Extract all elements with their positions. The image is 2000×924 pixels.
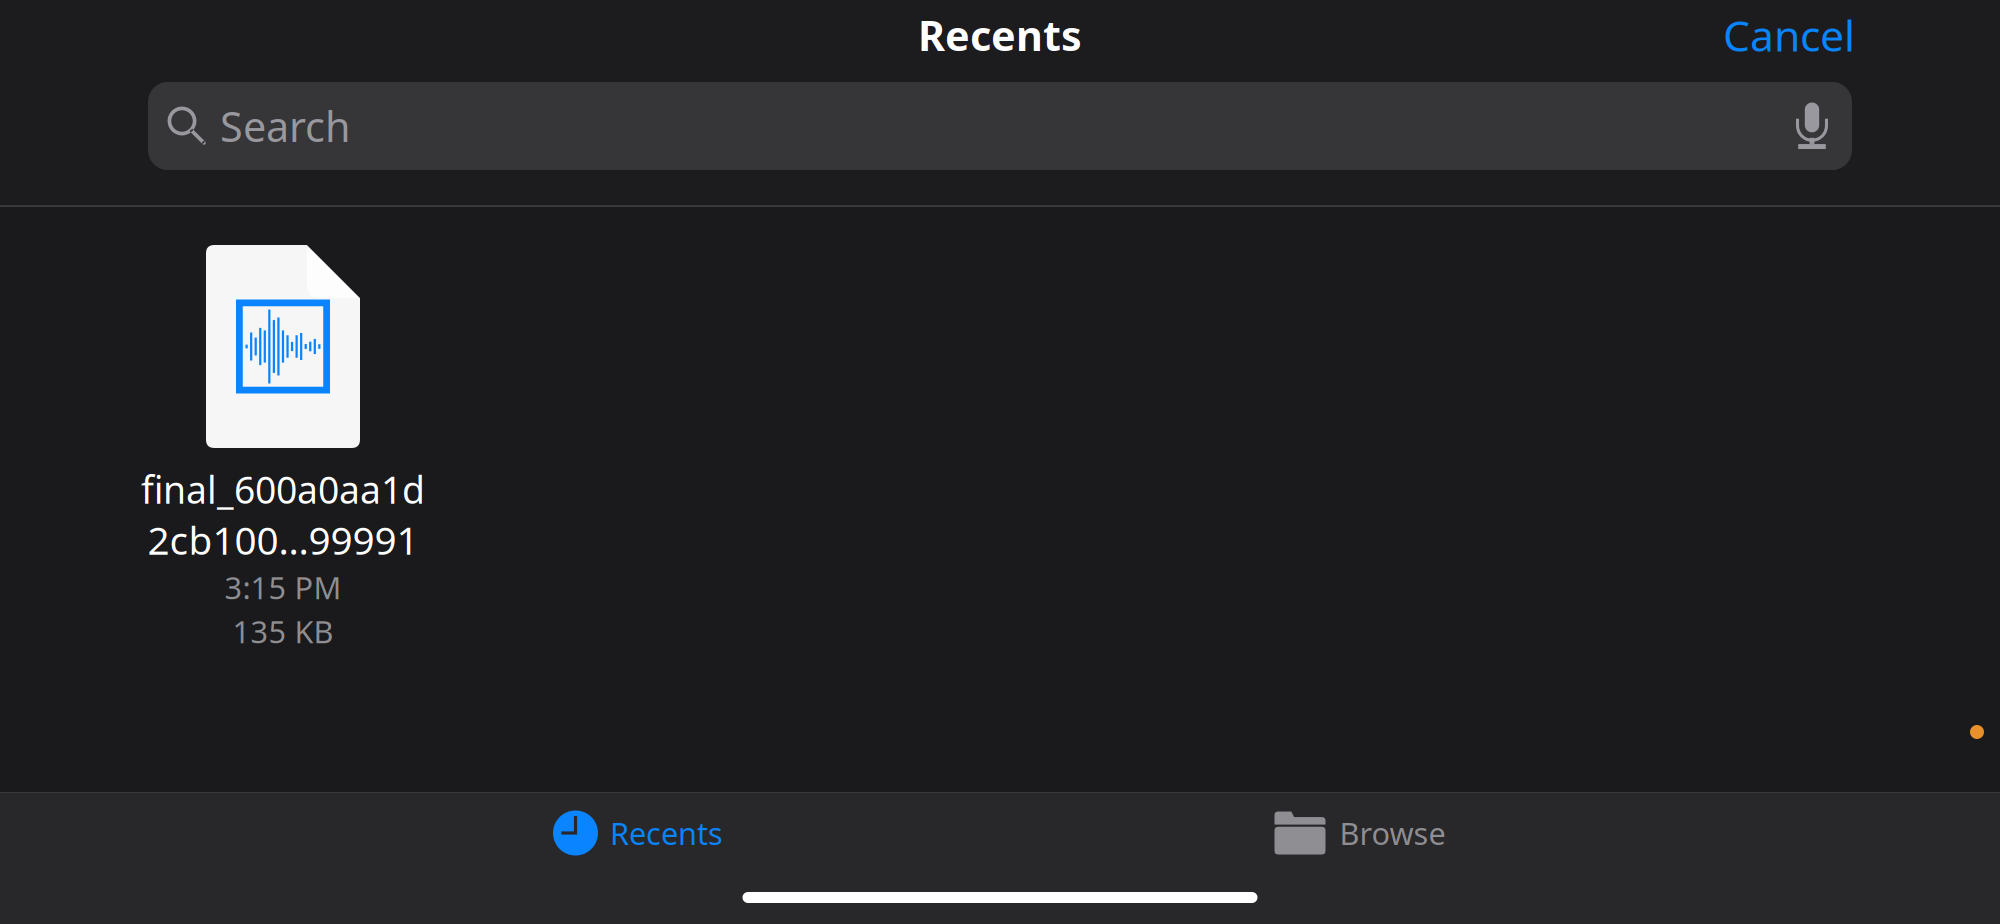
staticText: Cancel — [1723, 7, 1855, 63]
staticText: Search — [220, 99, 351, 153]
button[interactable]: final_600a0aa1d — [118, 245, 448, 641]
staticText: Recents — [918, 8, 1082, 62]
staticText: Recents — [610, 813, 723, 853]
button[interactable]: Browse — [1211, 801, 1509, 865]
button[interactable]: Cancel — [1713, 1, 1865, 69]
button[interactable]: Dictate — [1796, 102, 1852, 149]
staticText: 2cb100...99991 — [147, 514, 418, 565]
staticText: Browse — [1339, 813, 1445, 853]
staticText: 3:15 PM — [224, 567, 341, 608]
button[interactable]: Recents — [489, 801, 787, 865]
staticText: final_600a0aa1d — [141, 464, 425, 514]
staticText: 135 KB — [232, 611, 333, 652]
